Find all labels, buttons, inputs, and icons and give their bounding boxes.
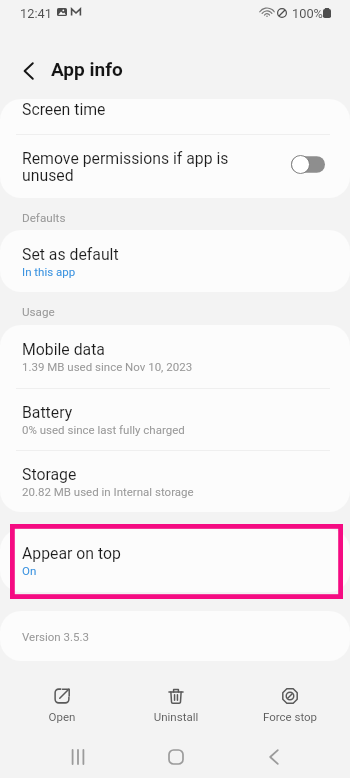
staticText: Defaults — [22, 211, 66, 225]
button[interactable]: Back — [254, 739, 294, 775]
button[interactable]: Screen time — [0, 99, 350, 198]
staticText: Usage — [22, 305, 55, 319]
staticText: 12:41 — [20, 6, 52, 21]
staticText: 1.39 MB used since Nov 10, 2023 — [22, 360, 193, 373]
button[interactable]: Navigate up — [16, 57, 44, 85]
staticText: Force stop — [245, 710, 335, 723]
staticText: Storage — [22, 465, 77, 484]
button[interactable]: Appear on top — [0, 529, 350, 592]
button[interactable]: Uninstall — [131, 681, 221, 727]
staticText: Remove permissions if app is unused — [22, 149, 229, 185]
staticText: Mobile data — [22, 340, 105, 359]
staticText: In this app — [22, 265, 76, 278]
button[interactable]: Set as default — [0, 230, 350, 292]
button[interactable]: Home — [156, 739, 196, 775]
button[interactable]: Recent apps — [58, 739, 98, 775]
staticText: Open — [17, 710, 107, 723]
staticText: 0% used since last fully charged — [22, 423, 185, 436]
button[interactable]: Open — [17, 681, 107, 727]
staticText: Screen time — [22, 100, 106, 119]
button[interactable]: Remove permissions toggle — [291, 155, 325, 174]
staticText: Version 3.5.3 — [22, 630, 90, 643]
staticText: Appear on top — [22, 544, 121, 563]
staticText: App info — [51, 58, 123, 80]
staticText: Set as default — [22, 245, 119, 264]
staticText: 100% — [292, 6, 323, 21]
staticText: 20.82 MB used in Internal storage — [22, 485, 194, 498]
button[interactable]: Force stop — [245, 681, 335, 727]
button[interactable]: Mobile data — [0, 325, 350, 512]
button[interactable]: Version 3.5.3 — [0, 611, 350, 661]
staticText: Battery — [22, 403, 73, 422]
staticText: Uninstall — [131, 710, 221, 723]
staticText: On — [22, 564, 37, 577]
